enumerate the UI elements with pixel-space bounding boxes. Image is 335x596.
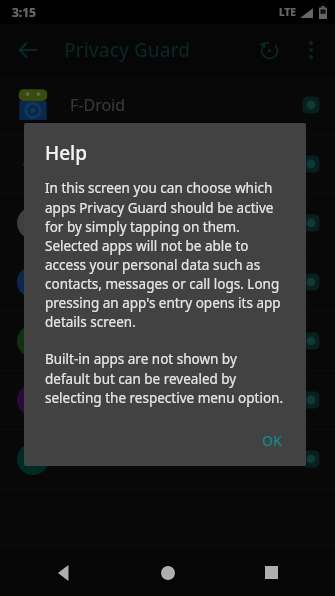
button[interactable]: Back: [24, 549, 104, 596]
staticText: Help: [45, 140, 88, 166]
button[interactable]: Recents: [231, 549, 311, 596]
staticText: Firefox: [70, 153, 122, 175]
button[interactable]: Home: [128, 549, 208, 596]
staticText: Maps: [70, 271, 111, 293]
button[interactable]: F-Droid: [0, 76, 335, 134]
button[interactable]: More options: [291, 30, 331, 70]
button[interactable]: Reset: [247, 28, 291, 72]
staticText: Music: [70, 389, 114, 411]
staticText: Phone: [70, 448, 119, 470]
button[interactable]: Firefox: [0, 135, 335, 193]
button[interactable]: Phone: [0, 430, 335, 488]
button[interactable]: Gallery: [0, 194, 335, 252]
staticText: 3:15: [12, 4, 36, 20]
staticText: F-Droid: [70, 94, 126, 116]
staticText: Gallery: [70, 212, 123, 234]
button[interactable]: Music: [0, 371, 335, 429]
button[interactable]: Back: [6, 28, 50, 72]
staticText: Built-in apps are not shown by default b…: [45, 350, 285, 407]
staticText: LTE: [279, 5, 296, 19]
button[interactable]: Messages: [0, 312, 335, 370]
staticText: Privacy Guard: [64, 37, 190, 63]
button[interactable]: OK: [248, 421, 296, 460]
button[interactable]: Maps: [0, 253, 335, 311]
staticText: OK: [262, 431, 282, 450]
staticText: In this screen you can choose which apps…: [45, 179, 285, 331]
